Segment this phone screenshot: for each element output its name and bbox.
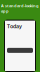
staticText: A standard-looking app: [1, 3, 39, 14]
staticText: Today: [7, 23, 22, 30]
